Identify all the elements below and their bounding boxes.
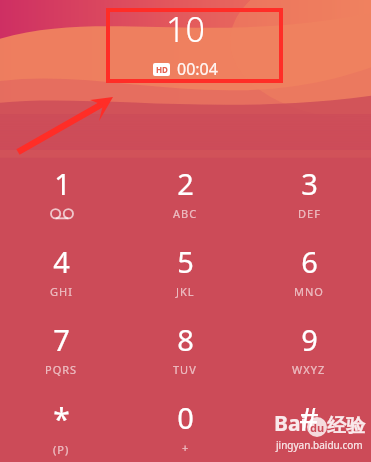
staticText: 1 <box>54 164 71 203</box>
staticText: # <box>299 398 319 439</box>
button[interactable]: Dial 4 <box>0 230 123 308</box>
button[interactable]: Dial 8 <box>123 308 247 386</box>
staticText: du <box>310 420 325 435</box>
button[interactable]: Dial # <box>247 386 371 462</box>
button[interactable]: Dial 7 <box>0 308 123 386</box>
staticText: HD <box>156 64 168 75</box>
button[interactable]: Dial * <box>0 386 123 462</box>
button[interactable]: Dial 2 <box>123 152 247 230</box>
staticText: ABC <box>173 206 198 221</box>
staticText: WXYZ <box>292 362 326 377</box>
staticText: PQRS <box>45 362 78 377</box>
staticText: Bai <box>274 409 307 438</box>
button[interactable]: Dial 5 <box>123 230 247 308</box>
staticText: 5 <box>177 242 194 281</box>
staticText: 7 <box>53 320 70 359</box>
staticText: (P) <box>53 442 70 457</box>
staticText: 经验 <box>327 414 365 438</box>
staticText: DEF <box>298 206 321 221</box>
staticText: 2 <box>177 164 194 203</box>
button[interactable]: Dial 9 <box>247 308 371 386</box>
staticText: JKL <box>176 284 195 299</box>
staticText: 10 <box>166 6 205 52</box>
staticText: 6 <box>301 242 318 281</box>
staticText: 0 <box>177 398 194 437</box>
staticText: MNO <box>294 284 324 299</box>
button[interactable]: Dial 1 <box>0 152 123 230</box>
staticText: 8 <box>177 320 194 359</box>
button[interactable]: Dial 6 <box>247 230 371 308</box>
staticText: 9 <box>301 320 318 359</box>
staticText: * <box>53 398 70 439</box>
button[interactable]: Dial 0 <box>123 386 247 462</box>
staticText: GHI <box>50 284 73 299</box>
staticText: 4 <box>53 242 70 281</box>
staticText: + <box>182 440 190 455</box>
staticText: jingyan.baidu.com <box>276 438 363 452</box>
staticText: 00:04 <box>177 58 218 80</box>
staticText: TUV <box>173 362 197 377</box>
staticText: 3 <box>301 164 318 203</box>
button[interactable]: Dial 3 <box>247 152 371 230</box>
